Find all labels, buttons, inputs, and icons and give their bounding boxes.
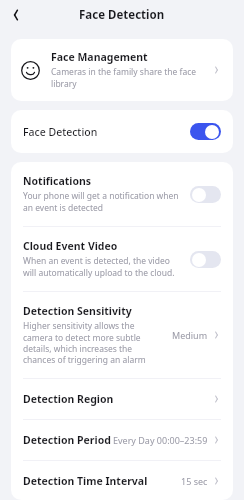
- staticText: Face Detection: [79, 7, 165, 23]
- button[interactable]: Detection Time Interval: [11, 461, 233, 500]
- staticText: Notifications: [23, 174, 92, 188]
- button[interactable]: Toggle: [190, 123, 221, 140]
- staticText: Detection Sensitivity: [23, 304, 132, 318]
- staticText: Cloud Event Video: [23, 239, 118, 253]
- staticText: 15 sec: [181, 475, 208, 487]
- button[interactable]: Detection Region: [11, 379, 233, 419]
- button[interactable]: Cloud Event Video: [11, 227, 233, 291]
- staticText: Face Detection: [23, 125, 190, 139]
- button[interactable]: Detection Period: [11, 420, 233, 460]
- button[interactable]: Back: [5, 4, 27, 26]
- staticText: Detection Period: [23, 433, 111, 447]
- staticText: Detection Time Interval: [23, 474, 148, 487]
- staticText: Higher sensitivity allows the camera to …: [23, 320, 164, 366]
- button[interactable]: Notifications: [11, 162, 233, 226]
- staticText: Detection Region: [23, 392, 114, 406]
- button[interactable]: Toggle: [190, 186, 221, 203]
- button[interactable]: Toggle: [190, 251, 221, 268]
- button[interactable]: Face Detection: [11, 110, 233, 153]
- staticText: When an event is detected, the video wil…: [23, 255, 180, 279]
- staticText: Medium: [172, 329, 208, 341]
- staticText: Your phone will get a notification when …: [23, 190, 180, 214]
- button[interactable]: Detection Sensitivity: [11, 292, 233, 378]
- staticText: Face Management: [51, 50, 148, 64]
- staticText: Every Day 00:00–23:59: [113, 434, 208, 446]
- button[interactable]: Face Management: [11, 39, 233, 101]
- staticText: Cameras in the family share the face lib…: [51, 66, 206, 90]
